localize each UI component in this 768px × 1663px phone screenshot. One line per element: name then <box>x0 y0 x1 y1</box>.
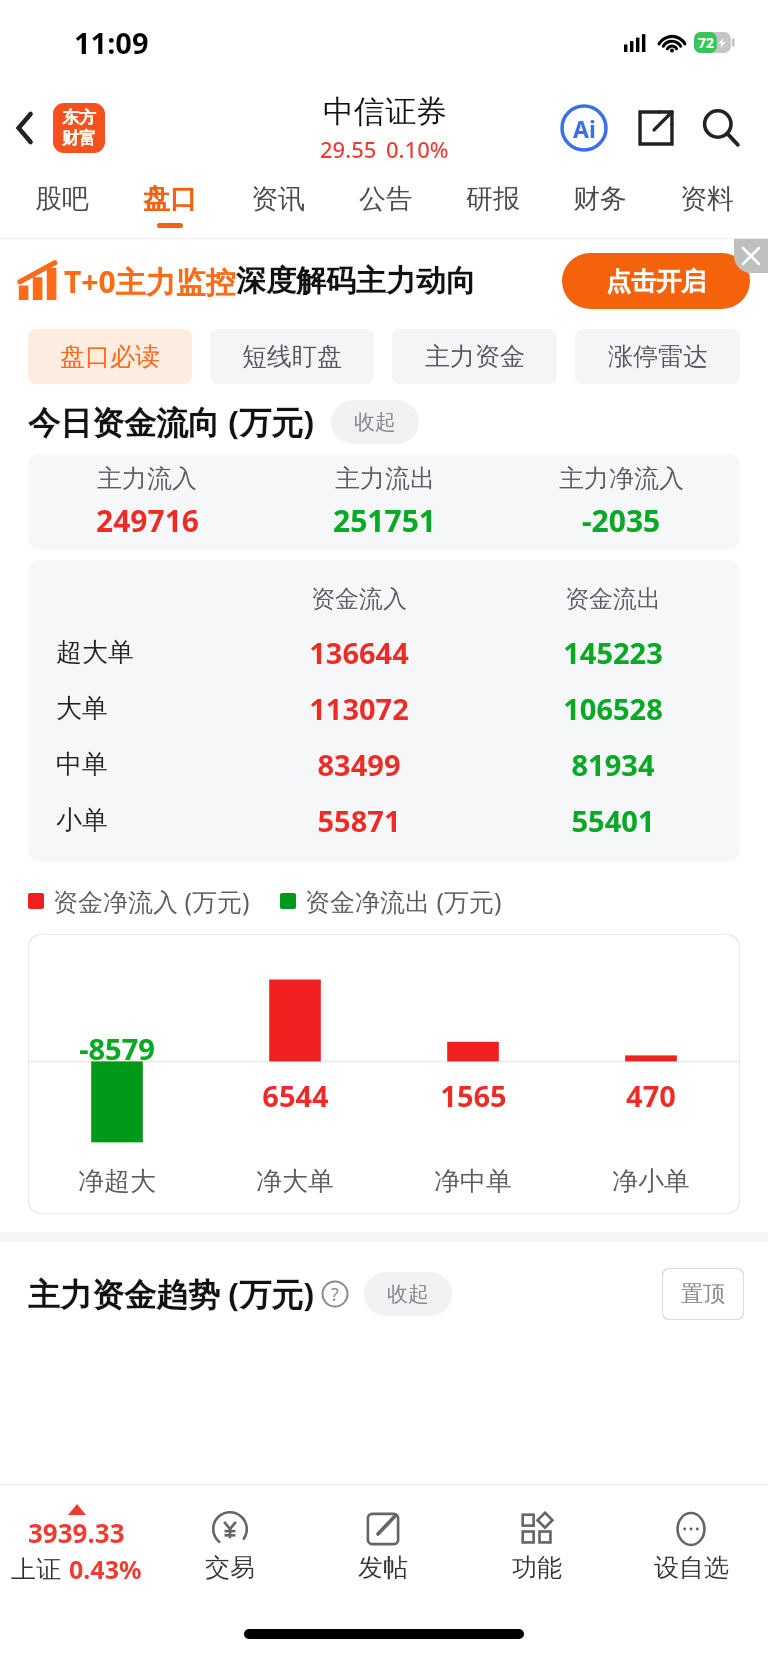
button[interactable]: 小单 <box>28 792 740 848</box>
staticText: 净小单 <box>562 1165 740 1198</box>
staticText: 超大单 <box>56 636 232 669</box>
staticText: 主力资金 <box>425 341 525 372</box>
staticText: Ai <box>573 113 596 144</box>
staticText: 盘口必读 <box>60 341 160 372</box>
staticText: 249716 <box>96 500 199 541</box>
staticText: 主力流入 <box>97 463 197 494</box>
button[interactable]: 点击开启 <box>562 253 750 309</box>
staticText: 收起 <box>354 409 396 435</box>
staticText: -2035 <box>582 500 661 541</box>
staticText: 大单 <box>56 692 232 725</box>
button[interactable]: Search <box>696 103 746 153</box>
staticText: 145223 <box>486 633 740 672</box>
button[interactable]: 设自选 <box>614 1485 768 1605</box>
button[interactable]: East Money <box>53 103 105 153</box>
button[interactable]: 发帖 <box>306 1485 460 1605</box>
staticText: 净大单 <box>206 1165 384 1198</box>
staticText: 11:09 <box>74 23 149 62</box>
staticText: 净中单 <box>384 1165 562 1198</box>
staticText: 470 <box>626 1076 676 1115</box>
button[interactable]: 短线盯盘 <box>210 329 374 384</box>
staticText: 涨停雷达 <box>608 341 708 372</box>
staticText: 83499 <box>232 745 486 784</box>
button[interactable]: 研报 <box>439 172 546 238</box>
staticText: 财富 <box>62 128 96 149</box>
button[interactable]: 公告 <box>332 172 439 238</box>
button[interactable]: 财务 <box>546 172 653 238</box>
staticText: 交易 <box>205 1552 255 1583</box>
button[interactable]: 3939.33 <box>0 1485 153 1605</box>
staticText: 收起 <box>387 1281 429 1307</box>
button[interactable]: 主力资金 <box>392 329 557 384</box>
button[interactable]: 交易 <box>153 1485 306 1605</box>
staticText: 研报 <box>466 182 520 216</box>
staticText: 置顶 <box>681 1280 725 1308</box>
button[interactable]: 超大单 <box>28 624 740 680</box>
button[interactable]: 中单 <box>28 736 740 792</box>
staticText: 上证 <box>11 1554 61 1585</box>
staticText: 资金净流出 (万元) <box>305 884 502 918</box>
staticText: 深度解码主力动向 <box>236 262 476 300</box>
staticText: 主力净流入 <box>559 463 684 494</box>
staticText: 81934 <box>486 745 740 784</box>
staticText: 55871 <box>232 801 486 840</box>
staticText: 财务 <box>573 182 627 216</box>
staticText: 设自选 <box>654 1552 729 1583</box>
staticText: 盘口 <box>143 182 197 216</box>
staticText: 今日资金流向 (万元) <box>28 400 315 444</box>
staticText: 55401 <box>486 801 740 840</box>
button[interactable]: 收起 <box>331 400 419 444</box>
button[interactable]: 资料 <box>653 172 760 238</box>
staticText: 净超大 <box>28 1165 206 1198</box>
staticText: 东方 <box>62 107 96 128</box>
staticText: 发帖 <box>358 1552 408 1583</box>
staticText: 106528 <box>486 689 740 728</box>
button[interactable]: 涨停雷达 <box>575 329 740 384</box>
staticText: 资金流入 <box>232 584 486 614</box>
staticText: 29.55 <box>320 134 377 164</box>
staticText: 0.43% <box>69 1552 142 1586</box>
staticText: 股吧 <box>35 182 89 216</box>
staticText: 公告 <box>359 182 413 216</box>
staticText: 中信证券 <box>323 92 447 131</box>
staticText: 136644 <box>232 633 486 672</box>
staticText: 功能 <box>512 1552 562 1583</box>
button[interactable]: AI <box>558 102 610 154</box>
staticText: 主力流出 <box>335 463 435 494</box>
staticText: 资金流出 <box>486 584 740 614</box>
staticText: 中单 <box>56 748 232 781</box>
staticText: 小单 <box>56 804 232 837</box>
button[interactable]: 功能 <box>460 1485 614 1605</box>
staticText: 资料 <box>680 182 734 216</box>
button[interactable]: T+0主力监控 <box>18 239 750 323</box>
button[interactable]: Share <box>632 104 680 152</box>
button[interactable]: 置顶 <box>662 1268 744 1320</box>
button[interactable]: 股吧 <box>8 172 116 238</box>
staticText: 资讯 <box>251 182 305 216</box>
staticText: 6544 <box>262 1076 329 1115</box>
staticText: 1565 <box>440 1076 507 1115</box>
staticText: 短线盯盘 <box>242 341 342 372</box>
button[interactable]: 盘口 <box>116 172 224 238</box>
button[interactable]: Help <box>320 1279 350 1309</box>
staticText: 251751 <box>333 500 436 541</box>
staticText: 资金净流入 (万元) <box>53 884 250 918</box>
staticText: 3939.33 <box>28 1515 125 1550</box>
button[interactable]: Close <box>734 239 768 273</box>
button[interactable]: 大单 <box>28 680 740 736</box>
staticText: 主力资金趋势 (万元) <box>28 1272 315 1316</box>
button[interactable]: 盘口必读 <box>28 329 192 384</box>
staticText: 0.10% <box>386 134 449 164</box>
button[interactable]: 收起 <box>364 1272 452 1316</box>
staticText: 72 <box>698 33 715 52</box>
button[interactable]: 资讯 <box>224 172 332 238</box>
button[interactable]: Back <box>0 84 50 172</box>
staticText: 点击开启 <box>606 266 706 297</box>
staticText: -8579 <box>79 1029 155 1068</box>
staticText: T+0主力监控 <box>64 261 236 302</box>
staticText: 113072 <box>232 689 486 728</box>
staticText: ? <box>331 1282 339 1307</box>
